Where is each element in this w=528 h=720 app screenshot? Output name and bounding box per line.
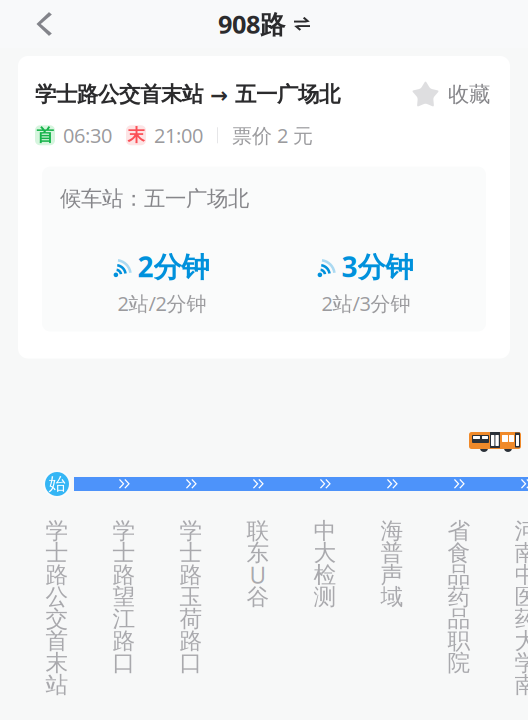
staticText: 中 xyxy=(514,561,528,589)
staticText: 口 xyxy=(112,649,135,677)
staticText: 学 xyxy=(112,517,135,545)
button[interactable]: 收藏 xyxy=(411,80,493,109)
staticText: 荷 xyxy=(179,605,202,633)
staticText: 普 xyxy=(380,539,403,567)
staticText: 学 xyxy=(514,649,528,677)
staticText: 票价 2 元 xyxy=(232,122,313,149)
staticText: 士 xyxy=(179,539,202,567)
staticText: 药 xyxy=(514,605,528,633)
staticText: 域 xyxy=(380,583,403,611)
staticText: 21:00 xyxy=(154,122,203,149)
staticText: 品 xyxy=(447,561,470,589)
staticText: 始 xyxy=(48,473,65,495)
staticText: 省 xyxy=(447,517,470,545)
staticText: 3分钟 xyxy=(341,248,413,285)
staticText: 院 xyxy=(447,649,470,677)
staticText: 中 xyxy=(313,517,336,545)
staticText: 职 xyxy=(447,627,470,655)
staticText: 南 xyxy=(514,671,528,699)
staticText: 谷 xyxy=(246,583,269,611)
staticText: 士 xyxy=(45,539,68,567)
staticText: 玉 xyxy=(179,583,202,611)
staticText: 食 xyxy=(447,539,470,567)
staticText: 大 xyxy=(313,539,336,567)
staticText: 河 xyxy=(514,517,528,545)
staticText: 联 xyxy=(246,517,269,545)
staticText: 学 xyxy=(45,517,68,545)
staticText: 末 xyxy=(127,125,144,146)
button[interactable]: Back xyxy=(0,2,69,46)
staticText: 2站/2分钟 xyxy=(117,290,206,316)
staticText: 检 xyxy=(313,561,336,589)
staticText: 站 xyxy=(45,671,68,699)
staticText: 2站/3分钟 xyxy=(321,290,410,316)
staticText: 候车站：五一广场北 xyxy=(60,186,249,212)
staticText: 末 xyxy=(45,649,68,677)
staticText: 908路 xyxy=(218,7,285,41)
staticText: 收藏 xyxy=(448,81,490,108)
staticText: 士 xyxy=(112,539,135,567)
staticText: 路 xyxy=(112,627,135,655)
staticText: 声 xyxy=(380,561,403,589)
staticText: 路 xyxy=(179,627,202,655)
staticText: 学士路公交首末站 → 五一广场北 xyxy=(35,81,340,108)
staticText: 首 xyxy=(36,125,53,146)
staticText: U xyxy=(249,560,266,590)
staticText: 交 xyxy=(45,605,68,633)
staticText: 路 xyxy=(45,561,68,589)
staticText: 路 xyxy=(179,561,202,589)
staticText: 测 xyxy=(313,583,336,611)
staticText: 海 xyxy=(380,517,403,545)
staticText: 望 xyxy=(112,583,135,611)
staticText: 南 xyxy=(514,539,528,567)
staticText: 药 xyxy=(447,583,470,611)
staticText: 大 xyxy=(514,627,528,655)
staticText: 公 xyxy=(45,583,68,611)
staticText: 东 xyxy=(246,539,269,567)
staticText: 医 xyxy=(514,583,528,611)
staticText: 路 xyxy=(112,561,135,589)
staticText: 学 xyxy=(179,517,202,545)
staticText: 2分钟 xyxy=(137,248,209,285)
staticText: 江 xyxy=(112,605,135,633)
staticText: 首 xyxy=(45,627,68,655)
staticText: 06:30 xyxy=(63,122,112,149)
staticText: 口 xyxy=(179,649,202,677)
staticText: 品 xyxy=(447,605,470,633)
